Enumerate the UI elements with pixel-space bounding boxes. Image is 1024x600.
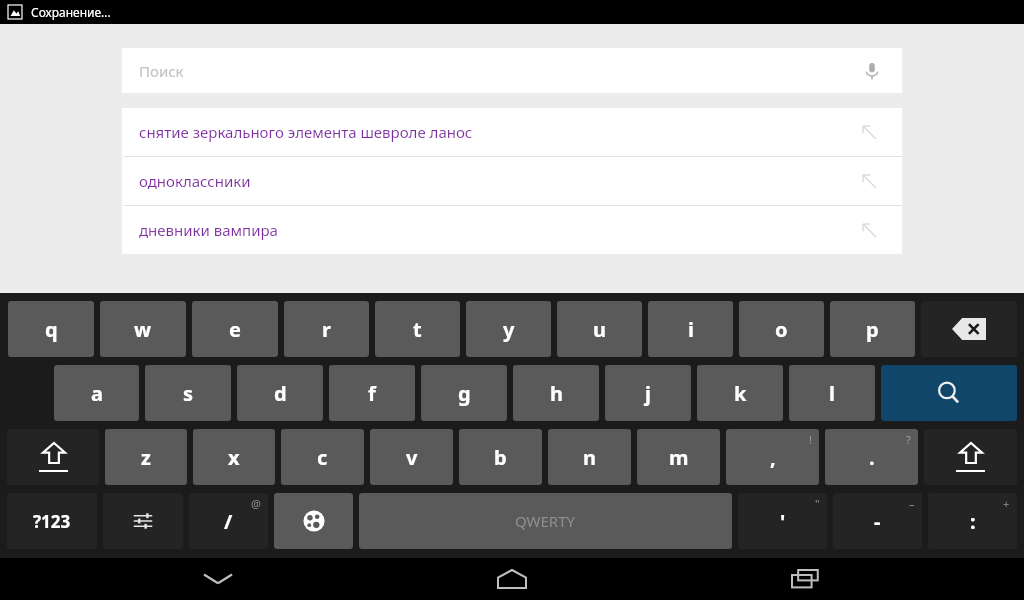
button[interactable]: q [8,301,94,357]
button[interactable]: Поиск [122,48,902,93]
staticText: t [413,316,422,343]
button[interactable]: ?123 [7,493,97,549]
staticText: - [874,508,881,535]
staticText: l [829,380,835,407]
button[interactable]: e [192,301,278,357]
button[interactable]: x [193,429,275,485]
staticText: p [866,316,879,343]
button[interactable]: Home [484,558,540,600]
button[interactable]: дневники вампира [122,206,902,254]
button[interactable]: r [284,301,369,357]
staticText: f [368,380,376,407]
button[interactable]: f [329,365,415,421]
staticText: QWERTY [515,511,576,531]
staticText: + [1003,496,1010,511]
staticText: " [815,496,820,511]
staticText: i [688,316,694,343]
button[interactable]: Hide keyboard [190,558,246,600]
button[interactable]: Insert suggestion [854,166,884,196]
button[interactable]: Insert suggestion [854,117,884,147]
staticText: / [224,508,233,535]
staticText: z [141,444,151,471]
button[interactable]: m [637,429,720,485]
staticText: – [909,496,915,511]
button[interactable]: Shift [7,429,99,485]
button[interactable]: k [697,365,783,421]
staticText: ? [906,432,911,447]
staticText: k [734,380,747,407]
staticText: c [317,444,328,471]
staticText: a [91,380,103,407]
button[interactable]: v [370,429,453,485]
button[interactable]: o [739,301,824,357]
staticText: v [406,444,418,471]
staticText: Сохранение... [31,4,111,20]
staticText: h [550,380,563,407]
button[interactable]: . [825,429,918,485]
button[interactable]: i [648,301,733,357]
staticText: j [645,380,651,407]
button[interactable]: s [145,365,231,421]
staticText: x [228,444,240,471]
staticText: дневники вампира [139,220,854,240]
button[interactable]: h [513,365,599,421]
button[interactable]: Backspace [921,301,1017,357]
staticText: ! [809,432,812,447]
button[interactable]: , [726,429,819,485]
button[interactable]: p [830,301,915,357]
staticText: b [494,444,507,471]
button[interactable]: снятие зеркального элемента шевроле лано… [122,108,902,156]
button[interactable]: Recent apps [778,558,834,600]
staticText: n [583,444,596,471]
button[interactable]: c [281,429,364,485]
staticText: снятие зеркального элемента шевроле лано… [139,122,854,142]
button[interactable]: Shift [924,429,1017,485]
button[interactable]: Keyboard settings [103,493,183,549]
button[interactable]: Space [359,493,732,549]
staticText: e [229,316,241,343]
staticText: : [970,508,976,535]
button[interactable]: - [833,493,922,549]
button[interactable]: d [237,365,323,421]
button[interactable]: j [605,365,691,421]
staticText: @ [251,496,261,511]
staticText: g [458,380,471,407]
staticText: m [669,444,689,471]
staticText: u [593,316,606,343]
button[interactable]: Search [881,365,1017,421]
button[interactable]: g [421,365,507,421]
button[interactable]: t [375,301,460,357]
button[interactable]: / [189,493,268,549]
staticText: q [45,316,58,343]
button[interactable]: Change language [274,493,353,549]
staticText: одноклассники [139,171,854,191]
button[interactable]: a [54,365,139,421]
button[interactable]: Voice search [856,55,888,87]
button[interactable]: одноклассники [122,157,902,205]
button[interactable]: y [466,301,551,357]
staticText: o [775,316,788,343]
button[interactable]: z [105,429,187,485]
button[interactable]: l [789,365,875,421]
staticText: . [869,444,875,471]
staticText: y [503,316,515,343]
button[interactable]: ' [738,493,827,549]
staticText: ' [780,508,786,535]
button[interactable]: u [557,301,642,357]
button[interactable]: Insert suggestion [854,215,884,245]
staticText: ?123 [33,510,71,533]
staticText: , [770,444,776,471]
staticText: r [322,316,331,343]
button[interactable]: w [100,301,186,357]
staticText: d [274,380,287,407]
staticText: Поиск [139,61,856,81]
button[interactable]: : [928,493,1017,549]
staticText: s [183,380,194,407]
button[interactable]: b [459,429,542,485]
button[interactable]: n [548,429,631,485]
staticText: w [134,316,152,343]
